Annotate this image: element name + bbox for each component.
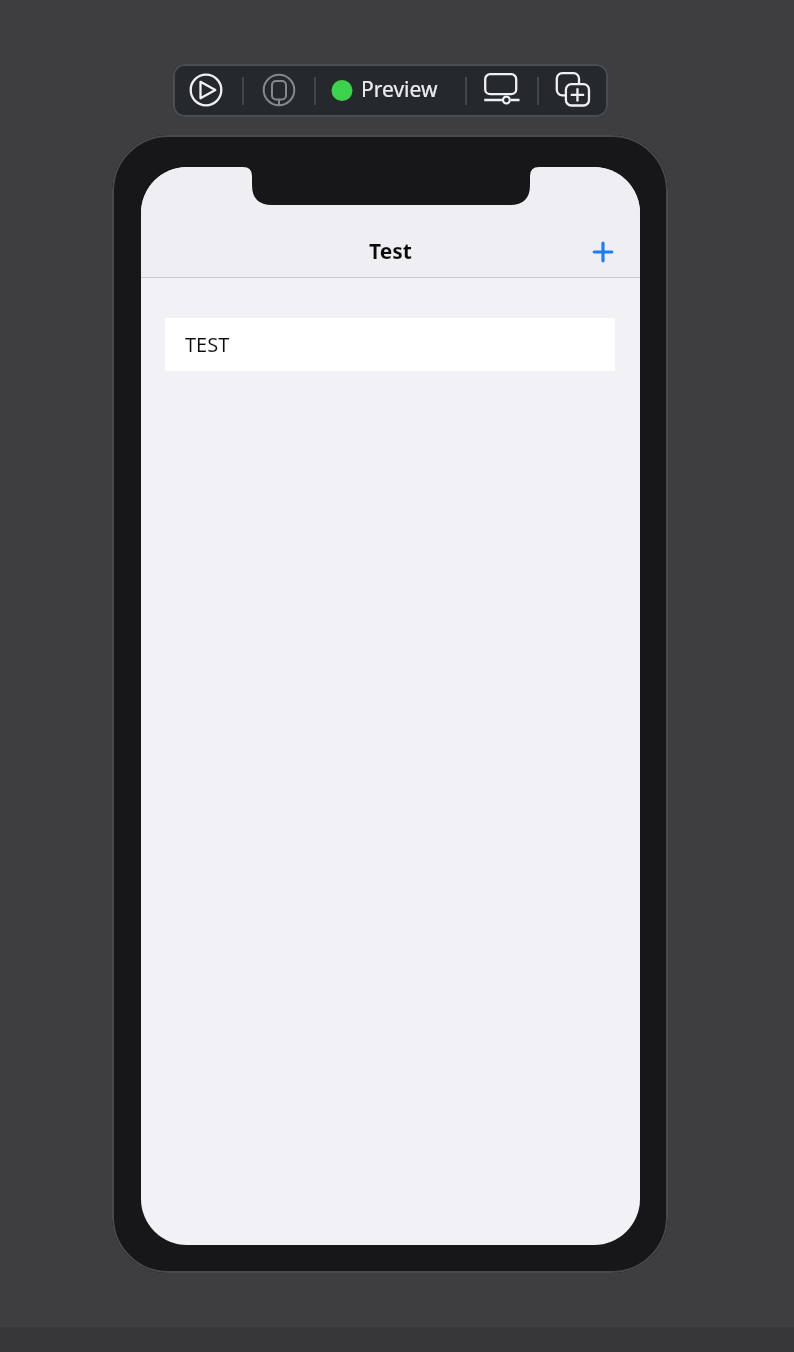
button[interactable]: TEST [165, 318, 615, 371]
button[interactable] [581, 230, 625, 274]
button[interactable] [189, 73, 223, 107]
button[interactable]: Preview [331, 64, 461, 117]
staticText: Test [369, 237, 412, 266]
staticText: Preview [361, 75, 438, 104]
button[interactable] [480, 73, 521, 107]
button[interactable] [262, 73, 296, 107]
button[interactable] [552, 71, 590, 109]
staticText: TEST [185, 331, 230, 358]
